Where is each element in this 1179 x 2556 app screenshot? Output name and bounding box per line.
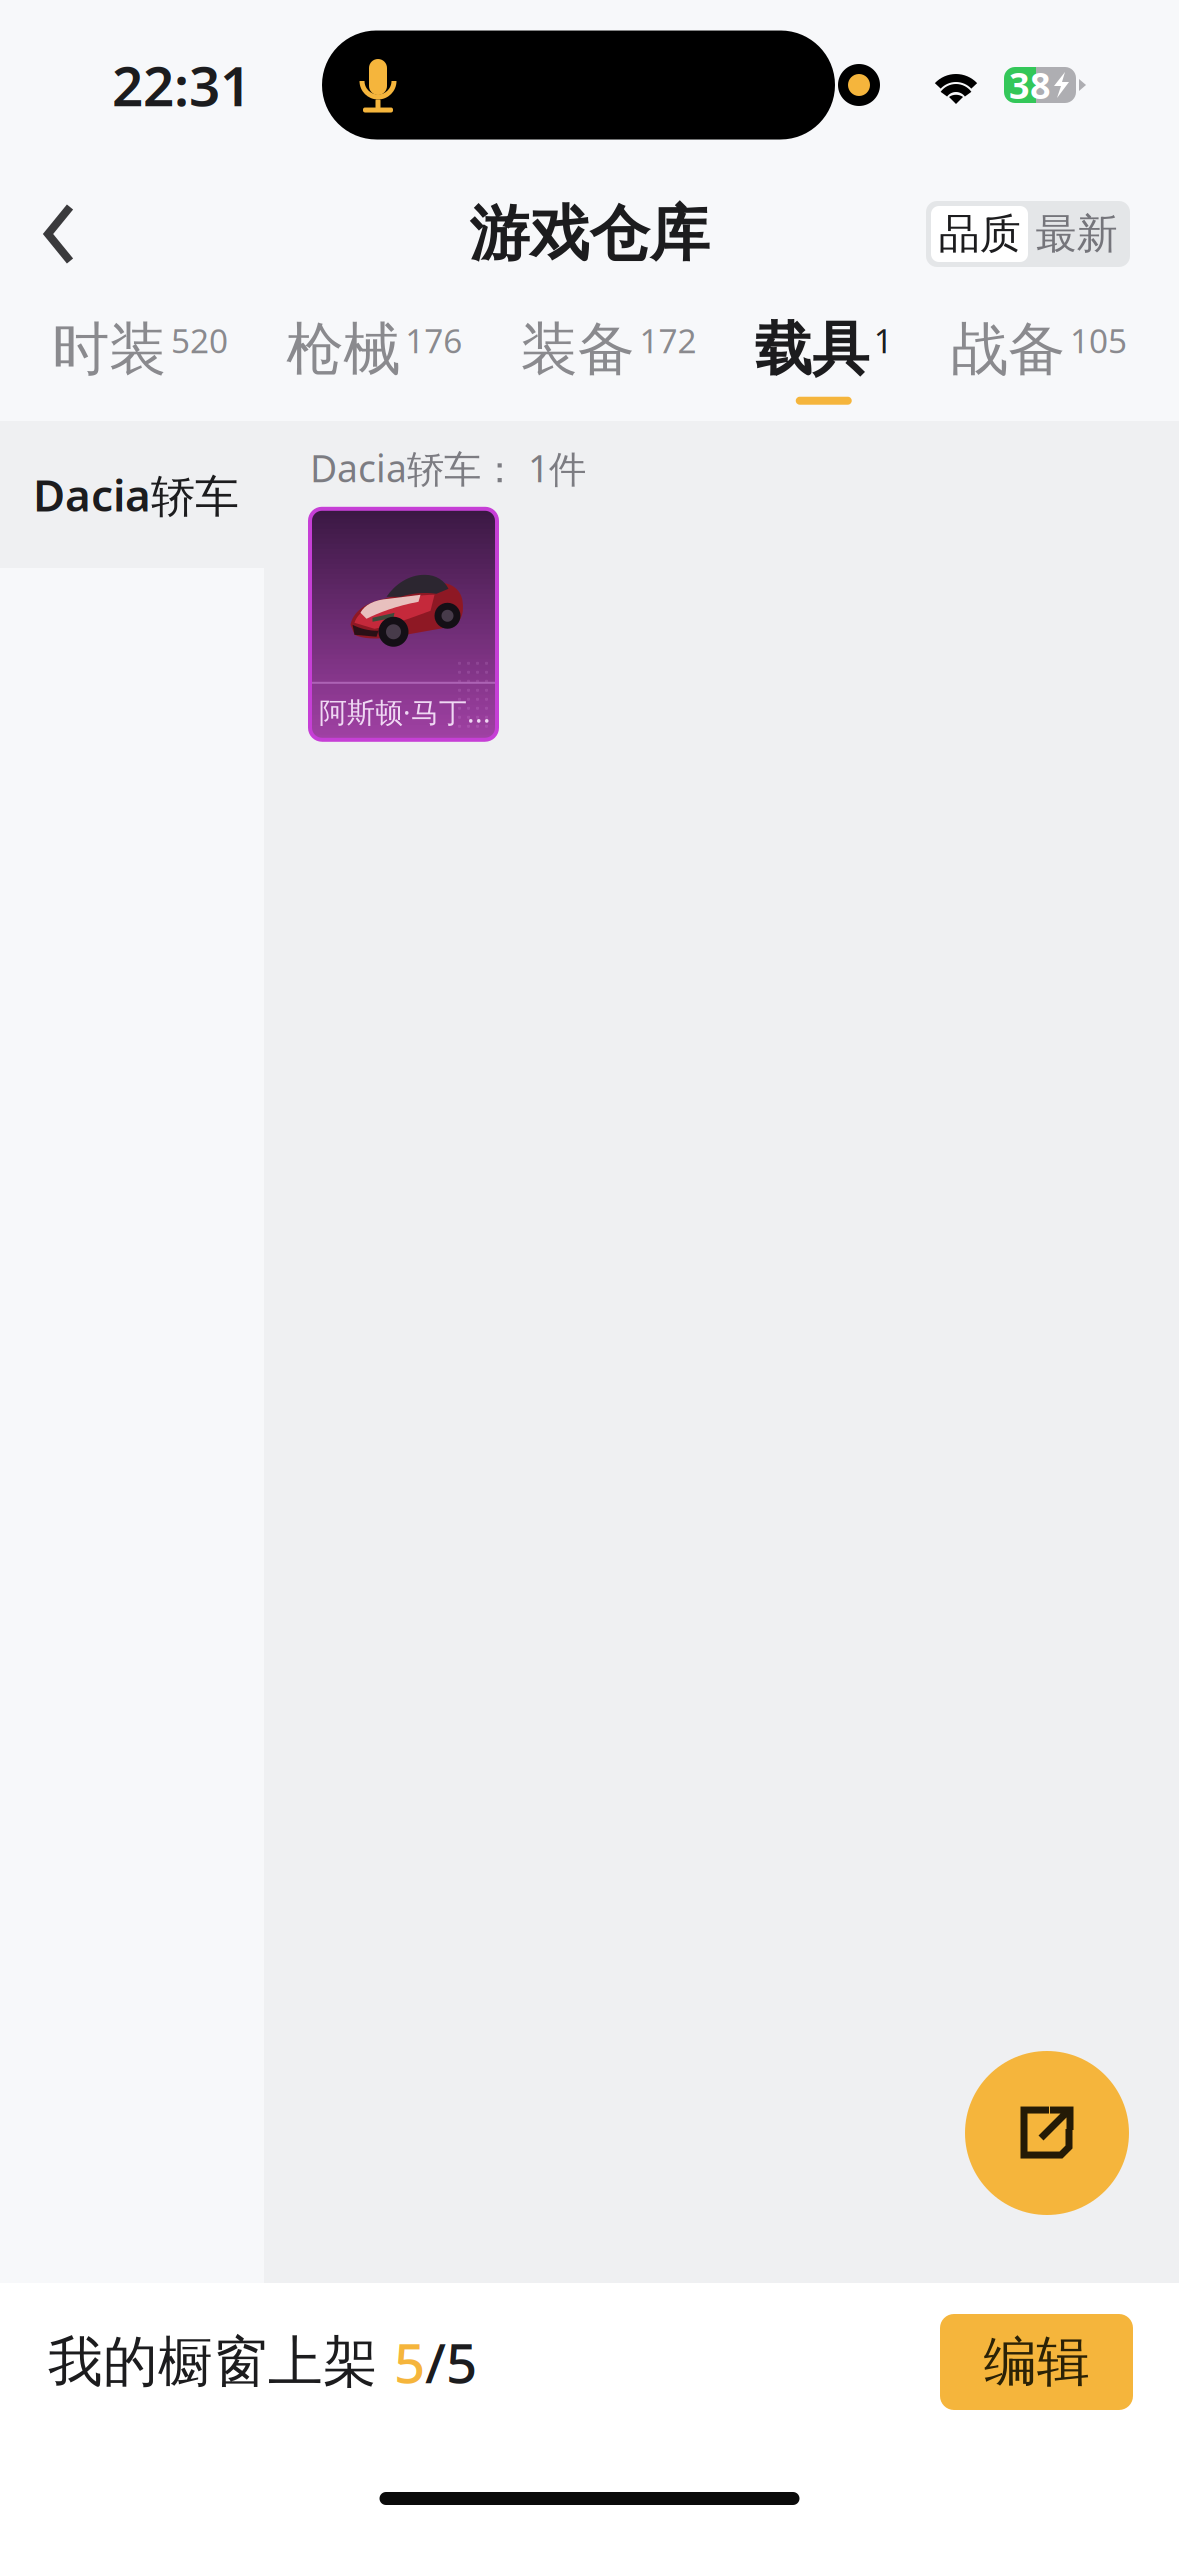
button[interactable]: 载具 [749, 314, 899, 405]
button[interactable]: 品质 [931, 206, 1028, 262]
staticText: 游戏仓库 [469, 197, 709, 271]
staticText: Dacia轿车 [33, 465, 239, 524]
staticText: 品质 [938, 209, 1020, 259]
button[interactable]: 编辑 [940, 2314, 1133, 2410]
staticText: /5 [425, 2326, 477, 2398]
staticText: 105 [1070, 318, 1127, 363]
staticText: 装备 [520, 314, 634, 385]
staticText: 枪械 [286, 314, 400, 385]
button[interactable]: 阿斯顿·马丁... [310, 509, 497, 740]
staticText: 5 [394, 2326, 425, 2398]
staticText: 172 [639, 318, 696, 363]
button[interactable]: 枪械 [280, 314, 468, 405]
button[interactable]: 战备 [945, 314, 1133, 405]
staticText: 战备 [951, 314, 1065, 385]
staticText: 38 [1009, 61, 1051, 109]
staticText: 编辑 [983, 2329, 1089, 2395]
staticText: 最新 [1035, 209, 1117, 259]
button[interactable]: Share [965, 2051, 1129, 2215]
staticText: 1 [874, 318, 893, 363]
button[interactable]: Dacia轿车 [0, 421, 264, 568]
button[interactable]: 装备 [514, 314, 702, 405]
staticText: 载具 [755, 314, 869, 385]
staticText: 520 [171, 318, 228, 363]
button[interactable]: 时装 [46, 314, 234, 405]
staticText: 阿斯顿·马丁... [319, 693, 491, 730]
button[interactable]: 最新 [1028, 206, 1125, 262]
button[interactable]: Back [0, 185, 110, 283]
staticText: 176 [405, 318, 462, 363]
staticText: 时装 [52, 314, 166, 385]
staticText: Dacia轿车： 1件 [310, 443, 586, 493]
staticText: 22:31 [112, 49, 251, 121]
staticText: 我的橱窗上架 [48, 2328, 394, 2395]
